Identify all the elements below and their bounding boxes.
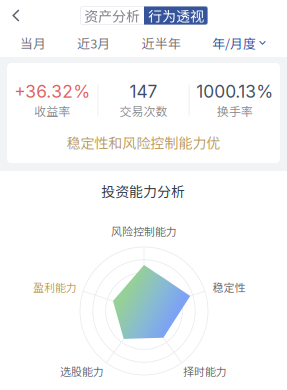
button[interactable]: 近3月 [77, 31, 110, 55]
staticText: 资产分析 [84, 5, 140, 26]
staticText: 换手率 [217, 102, 253, 119]
staticText: 交易次数 [119, 102, 167, 119]
staticText: 收益率 [34, 102, 70, 119]
staticText: 1000.13% [196, 81, 273, 102]
button[interactable]: 年/月度 [212, 31, 266, 55]
button[interactable]: 行为透视 [144, 6, 208, 25]
staticText: 选股能力 [60, 363, 104, 379]
staticText: +36.32% [14, 81, 90, 102]
button[interactable]: 当月 [20, 31, 46, 55]
staticText: 年/月度 [212, 34, 256, 52]
staticText: 盈利能力 [33, 279, 77, 295]
staticText: 行为透视 [148, 5, 204, 26]
button[interactable]: 资产分析 [80, 6, 144, 25]
button[interactable]: 近半年 [142, 31, 181, 55]
staticText: 稳定性和风险控制能力优 [66, 132, 220, 153]
button[interactable]: Back [3, 3, 29, 28]
staticText: 稳定性 [212, 279, 245, 295]
staticText: 近3月 [77, 34, 110, 52]
staticText: 风险控制能力 [111, 223, 177, 239]
staticText: 近半年 [142, 34, 181, 52]
staticText: 择时能力 [183, 363, 227, 379]
staticText: 投资能力分析 [101, 181, 185, 201]
staticText: 147 [129, 81, 157, 102]
staticText: 当月 [20, 34, 46, 52]
